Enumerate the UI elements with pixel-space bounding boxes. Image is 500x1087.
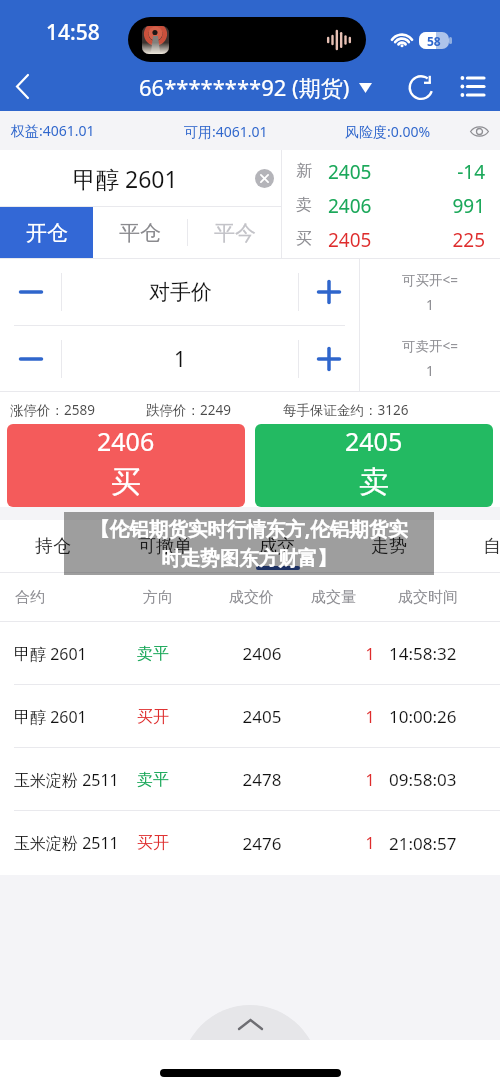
button[interactable]: 平今 [188, 207, 281, 258]
button[interactable]: 玉米淀粉 2511 [0, 811, 500, 875]
staticText: 对手价 [149, 279, 212, 305]
staticText: 2405 [222, 705, 302, 728]
staticText: 玉米淀粉 2511 [14, 832, 119, 854]
staticText: 每手保证金约：3126 [283, 401, 409, 419]
staticText: 2478 [222, 768, 302, 791]
button[interactable]: Clear contract [253, 167, 276, 190]
staticText: 涨停价：2589 [10, 401, 95, 419]
staticText: 991 [452, 193, 485, 219]
staticText: 新 [296, 161, 312, 181]
staticText: 成交量 [311, 588, 356, 607]
staticText: 跌停价：2249 [146, 401, 231, 419]
staticText: 走势 [371, 535, 407, 558]
staticText: 1 [174, 345, 187, 374]
staticText: 66********92 (期货) [139, 72, 350, 102]
staticText: 可买开<= [402, 271, 458, 289]
staticText: 2406 [97, 424, 155, 458]
staticText: -14 [457, 159, 485, 185]
staticText: 【伦铝期货实时行情东方,伦铝期货实 时走势图东方财富】 [90, 515, 408, 571]
button[interactable]: Back [0, 62, 44, 111]
staticText: 合约 [15, 588, 45, 607]
button[interactable]: 自选 [445, 520, 500, 572]
staticText: 卖平 [137, 770, 169, 790]
staticText: 卖 [296, 195, 312, 215]
button[interactable]: Scroll to top [181, 1005, 319, 1040]
staticText: 开仓 [26, 220, 68, 246]
staticText: 2406 [222, 642, 302, 665]
staticText: 甲醇 2601 [14, 643, 87, 665]
staticText: 1 [330, 769, 410, 791]
staticText: 买开 [137, 833, 169, 853]
staticText: 方向 [143, 588, 173, 607]
button[interactable]: 甲醇 2601 [0, 685, 500, 748]
button[interactable]: Refresh [404, 62, 440, 111]
button[interactable]: 可撤单 [109, 520, 221, 572]
button[interactable]: Increase [299, 259, 359, 325]
button[interactable]: 甲醇 2601 [0, 622, 500, 685]
staticText: 买开 [137, 707, 169, 727]
button[interactable]: 开仓 [0, 207, 93, 258]
staticText: 14:58:32 [389, 642, 457, 665]
staticText: 玉米淀粉 2511 [14, 769, 119, 791]
staticText: 卖 [359, 463, 389, 501]
staticText: 1 [330, 643, 410, 665]
staticText: 甲醇 2601 [14, 706, 87, 728]
staticText: 成交时间 [398, 588, 458, 607]
button[interactable]: 2406 [7, 424, 245, 507]
staticText: 1 [330, 706, 410, 728]
staticText: 平仓 [119, 220, 161, 246]
button[interactable]: 持仓 [0, 520, 109, 572]
staticText: 2405 [345, 424, 403, 458]
staticText: 风险度:0.00% [345, 122, 431, 141]
staticText: 可用:4061.01 [184, 122, 268, 141]
staticText: 1 [426, 361, 435, 380]
staticText: 可撤单 [138, 535, 192, 558]
button[interactable]: 玉米淀粉 2511 [0, 748, 500, 811]
button[interactable]: 走势 [333, 520, 445, 572]
staticText: 225 [452, 227, 485, 253]
button[interactable]: 成交 [221, 520, 333, 572]
staticText: 1 [330, 832, 410, 854]
staticText: 买 [296, 229, 312, 249]
staticText: 2405 [328, 159, 372, 185]
staticText: 权益:4061.01 [11, 121, 95, 140]
button[interactable]: Increase [299, 326, 359, 392]
button[interactable]: 平仓 [93, 207, 187, 258]
staticText: 2476 [222, 832, 302, 855]
staticText: 买 [111, 463, 141, 501]
button[interactable]: Toggle visibility [466, 118, 492, 144]
staticText: 成交价 [229, 588, 274, 607]
staticText: 10:00:26 [389, 705, 457, 728]
button[interactable]: Decrease [0, 259, 61, 325]
staticText: 卖平 [137, 644, 169, 664]
staticText: 平今 [214, 220, 256, 246]
staticText: 2406 [328, 193, 372, 219]
staticText: 成交 [259, 535, 295, 558]
staticText: 自选 [483, 535, 500, 558]
staticText: 1 [426, 295, 435, 314]
button[interactable]: 66********92 (期货) [139, 62, 372, 111]
staticText: 21:08:57 [389, 832, 457, 855]
staticText: 持仓 [35, 535, 71, 558]
staticText: 09:58:03 [389, 768, 457, 791]
staticText: 甲醇 2601 [73, 163, 178, 194]
staticText: 58 [427, 33, 441, 49]
staticText: 14:58 [46, 18, 100, 47]
staticText: 2405 [328, 227, 372, 253]
button[interactable]: 2405 [255, 424, 493, 507]
button[interactable]: Decrease [0, 326, 61, 392]
button[interactable]: Menu [454, 62, 490, 111]
staticText: 可卖开<= [402, 337, 458, 355]
